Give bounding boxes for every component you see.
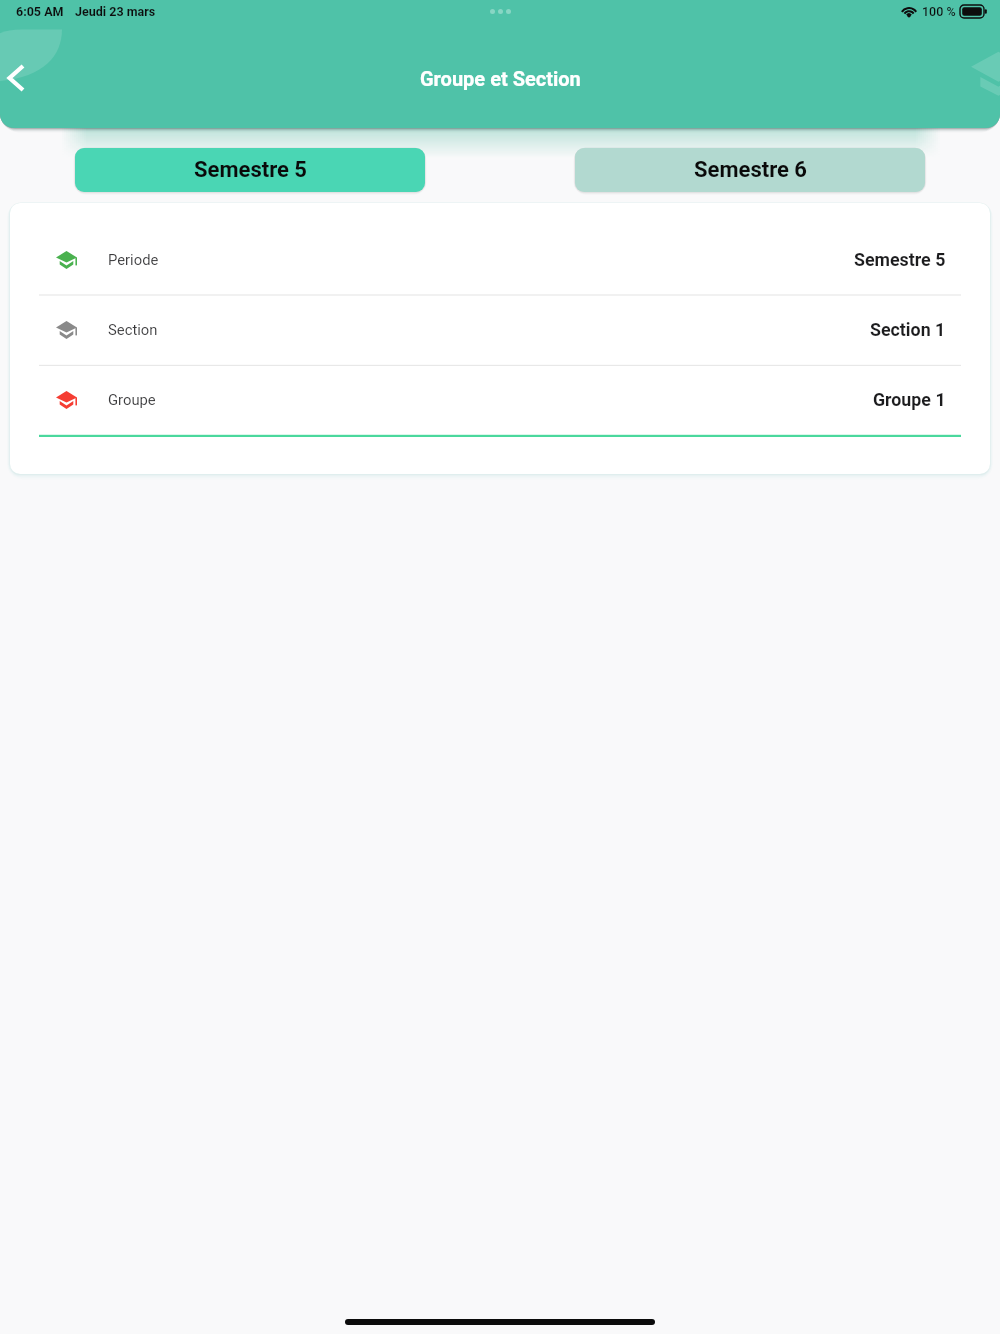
button[interactable]: Semestre 6 — [575, 148, 925, 192]
staticText: 6:05 AM — [16, 4, 64, 19]
staticText: Semestre 5 — [854, 249, 946, 270]
button[interactable]: Back — [0, 50, 44, 106]
staticText: Semestre 5 — [194, 157, 307, 183]
staticText: Section 1 — [870, 319, 946, 340]
staticText: Groupe 1 — [873, 389, 946, 410]
staticText: Groupe et Section — [420, 67, 581, 90]
staticText: Periode — [108, 251, 159, 268]
staticText: Groupe — [108, 391, 156, 408]
button[interactable]: Periode — [10, 225, 990, 295]
staticText: 100 % — [922, 4, 956, 19]
staticText: Jeudi 23 mars — [75, 4, 156, 19]
button[interactable]: Section — [10, 295, 990, 365]
staticText: Section — [108, 321, 158, 338]
staticText: Semestre 6 — [694, 157, 807, 183]
button[interactable]: Groupe — [10, 365, 990, 435]
button[interactable]: Semestre 5 — [75, 148, 425, 192]
